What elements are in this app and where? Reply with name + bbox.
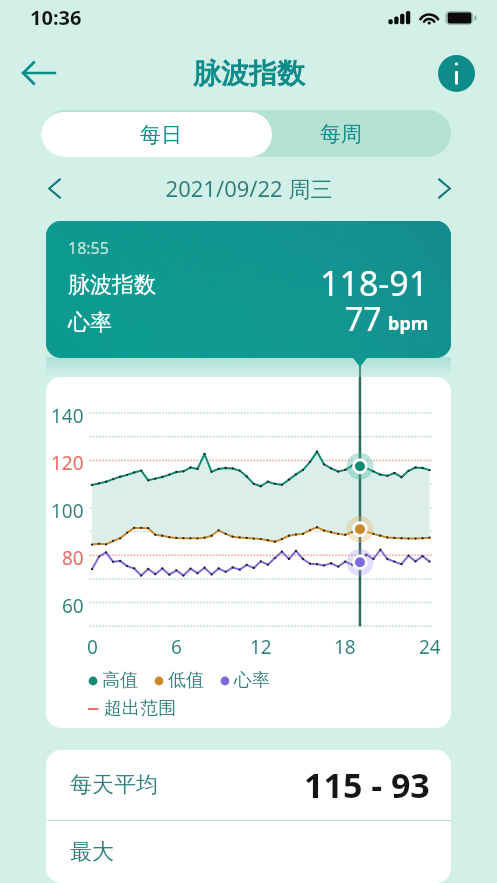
button[interactable]: 最大 (46, 821, 451, 883)
staticText: 高值 (102, 669, 138, 692)
staticText: 18:55 (68, 237, 109, 259)
staticText: bpm (388, 311, 429, 336)
staticText: 低值 (168, 669, 204, 692)
staticText: 80 (62, 545, 84, 571)
button[interactable]: 18:55 (46, 221, 451, 358)
staticText: 115 - 93 (304, 762, 430, 808)
staticText: 0 (87, 634, 98, 660)
staticText: 2021/09/22 周三 (71, 173, 427, 203)
staticText: 每日 (140, 122, 182, 148)
staticText: 140 (51, 403, 84, 429)
button[interactable]: Previous day (37, 171, 71, 205)
staticText: 最大 (70, 838, 114, 866)
staticText: 100 (51, 498, 84, 524)
staticText: 心率 (68, 309, 112, 337)
staticText: 心率 (234, 669, 270, 692)
staticText: 10:36 (30, 4, 82, 31)
staticText: 118-91 (320, 260, 429, 306)
staticText: 每天平均 (70, 771, 158, 799)
staticText: 18 (334, 634, 356, 660)
staticText: 脉波指数 (68, 271, 156, 299)
button[interactable]: 每日 (41, 112, 272, 157)
staticText: 每周 (320, 121, 362, 147)
staticText: 77 (345, 297, 382, 341)
staticText: 120 (51, 450, 84, 476)
staticText: 6 (171, 634, 182, 660)
staticText: 60 (62, 593, 84, 619)
button[interactable]: Back (15, 49, 63, 97)
button[interactable]: 每周 (272, 110, 451, 157)
staticText: 24 (419, 634, 441, 660)
button[interactable]: 每天平均 (46, 750, 451, 820)
staticText: 超出范围 (104, 697, 176, 720)
staticText: 脉波指数 (193, 56, 305, 91)
staticText: 12 (250, 634, 272, 660)
button[interactable]: Next day (427, 171, 461, 205)
button[interactable]: Info (438, 55, 475, 92)
